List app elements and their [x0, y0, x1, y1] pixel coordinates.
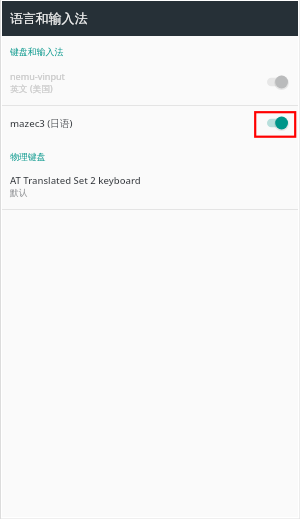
staticText: 键盘和输入法 [10, 46, 64, 57]
button[interactable]: mazec3 switch, on [265, 113, 287, 133]
button[interactable]: AT Translated Set 2 keyboard [2, 174, 298, 199]
button[interactable]: 语言和输入法 [2, 1, 298, 36]
staticText: AT Translated Set 2 keyboard [10, 174, 141, 187]
staticText: 物理键盘 [10, 151, 46, 162]
staticText: nemu-vinput [10, 70, 65, 82]
staticText: mazec3 (日语) [10, 117, 265, 130]
button[interactable]: nemu-vinput [2, 64, 298, 100]
staticText: 默认 [10, 188, 28, 199]
staticText: 英文 (美国) [10, 83, 53, 95]
button[interactable]: mazec3 (日语) [2, 106, 298, 140]
staticText: 语言和输入法 [10, 11, 88, 27]
button[interactable]: nemu-vinput switch, off [265, 72, 287, 92]
